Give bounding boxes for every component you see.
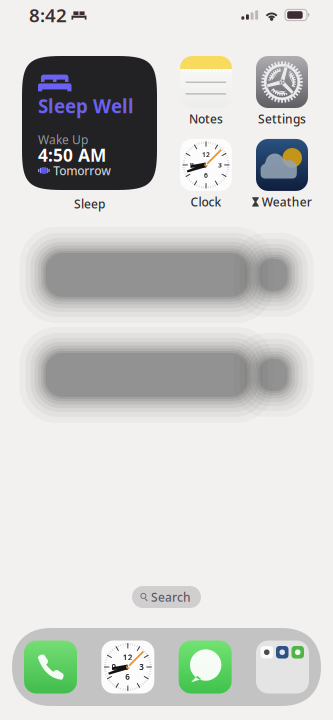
button[interactable]: Apps folder xyxy=(256,640,309,693)
staticText: 8:42 xyxy=(29,3,67,27)
staticText: 3 xyxy=(139,662,144,672)
button[interactable]: Weather xyxy=(248,139,316,210)
staticText: 3 xyxy=(218,160,222,169)
staticText: 12 xyxy=(202,150,210,159)
staticText: Notes xyxy=(189,111,223,127)
button[interactable]: Phone xyxy=(24,640,77,693)
button[interactable]: Clock xyxy=(101,640,154,693)
staticText: Sleep Well xyxy=(38,94,134,118)
staticText: 4:50 AM xyxy=(38,143,106,166)
staticText: 12 xyxy=(123,652,133,663)
staticText: Tomorrow xyxy=(53,162,111,178)
staticText: Wake Up xyxy=(38,131,88,147)
staticText: 9 xyxy=(111,662,116,672)
staticText: 6 xyxy=(125,671,130,682)
staticText: Weather xyxy=(262,194,312,210)
staticText: Sleep xyxy=(74,196,105,212)
staticText: Settings xyxy=(258,111,306,127)
button[interactable]: Messages xyxy=(179,640,232,693)
button[interactable]: Settings xyxy=(248,56,316,127)
button[interactable]: 12 xyxy=(172,139,240,210)
staticText: Clock xyxy=(190,194,221,210)
button[interactable]: Sleep Well xyxy=(22,56,157,190)
staticText: 9 xyxy=(190,160,194,169)
staticText: Search xyxy=(151,589,191,605)
button[interactable]: Notes xyxy=(172,56,240,127)
staticText: 6 xyxy=(204,171,208,180)
button[interactable]: Search xyxy=(132,586,201,608)
